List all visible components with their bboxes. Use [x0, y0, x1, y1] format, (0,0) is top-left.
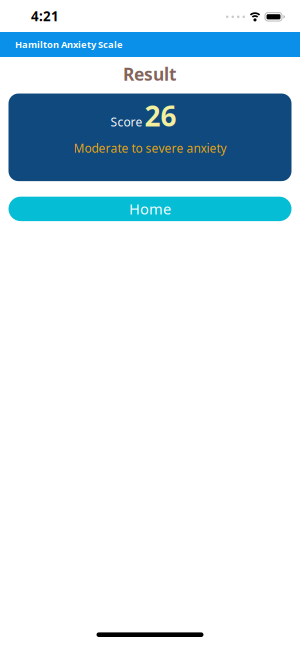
staticText: 4:21: [31, 7, 59, 25]
staticText: Score: [110, 114, 142, 130]
staticText: Hamilton Anxiety Scale: [15, 38, 123, 51]
staticText: Result: [123, 62, 177, 85]
button[interactable]: Home: [8, 197, 291, 221]
staticText: Home: [129, 199, 171, 219]
staticText: Moderate to severe anxiety: [73, 140, 226, 156]
staticText: 26: [144, 97, 176, 134]
